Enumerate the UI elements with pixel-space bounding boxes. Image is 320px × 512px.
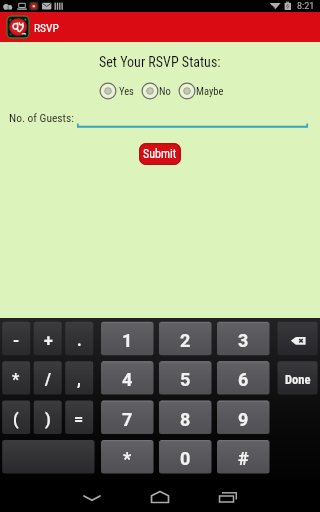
button[interactable] xyxy=(99,82,117,100)
staticText: , xyxy=(77,370,81,389)
button[interactable]: 7 xyxy=(101,401,154,434)
button[interactable] xyxy=(78,488,106,504)
staticText: 8 xyxy=(180,409,191,430)
staticText: 2 xyxy=(180,330,191,351)
staticText: . xyxy=(77,331,82,350)
staticText: 4 xyxy=(122,369,133,390)
button[interactable] xyxy=(178,82,196,100)
staticText: + xyxy=(44,331,53,350)
staticText: 0 xyxy=(180,448,191,469)
staticText: Done xyxy=(285,372,311,387)
staticText: ( xyxy=(13,410,19,429)
staticText: 8:21 xyxy=(297,1,315,12)
staticText: Submit xyxy=(143,147,177,161)
staticText: 9 xyxy=(238,409,249,430)
staticText: 3 xyxy=(238,330,249,351)
button[interactable]: 1 xyxy=(101,322,154,355)
button[interactable]: 2 xyxy=(159,322,212,355)
staticText: # xyxy=(238,448,249,469)
button[interactable]: 9 xyxy=(217,401,270,434)
staticText: / xyxy=(45,370,51,389)
button[interactable] xyxy=(146,486,174,506)
staticText: 1 xyxy=(122,330,133,351)
button[interactable]: 0 xyxy=(159,440,212,473)
staticText: No xyxy=(159,85,171,97)
button[interactable]: # xyxy=(217,440,270,473)
staticText: No. of Guests: xyxy=(9,111,74,124)
staticText: ) xyxy=(45,410,51,429)
staticText: * xyxy=(123,448,132,469)
button[interactable]: RSVP xyxy=(0,12,320,42)
button[interactable]: - xyxy=(2,322,30,355)
button[interactable]: 4 xyxy=(101,361,154,394)
button[interactable]: ) xyxy=(34,401,62,434)
staticText: 7 xyxy=(122,409,133,430)
button[interactable]: . xyxy=(65,322,93,355)
staticText: Maybe xyxy=(196,85,224,97)
button[interactable]: Done xyxy=(278,361,318,394)
button[interactable]: ( xyxy=(2,401,30,434)
staticText: Set Your RSVP Status: xyxy=(99,54,221,70)
staticText: 5 xyxy=(180,369,191,390)
staticText: - xyxy=(13,331,20,350)
staticText: * xyxy=(12,370,20,389)
button[interactable]: / xyxy=(34,361,62,394)
button[interactable]: 6 xyxy=(217,361,270,394)
button[interactable]: 8 xyxy=(159,401,212,434)
button[interactable]: , xyxy=(65,361,93,394)
staticText: RSVP xyxy=(34,21,59,34)
button[interactable]: * xyxy=(101,440,154,473)
button[interactable]: 5 xyxy=(159,361,212,394)
staticText: Yes xyxy=(119,85,134,97)
button[interactable] xyxy=(212,486,240,506)
button[interactable]: 3 xyxy=(217,322,270,355)
button[interactable]: = xyxy=(65,401,93,434)
button[interactable] xyxy=(141,82,159,100)
staticText: 6 xyxy=(238,369,249,390)
button[interactable]: + xyxy=(34,322,62,355)
button[interactable]: * xyxy=(2,361,30,394)
button[interactable] xyxy=(278,322,318,355)
staticText: = xyxy=(74,410,84,429)
button[interactable]: Submit xyxy=(139,143,181,165)
